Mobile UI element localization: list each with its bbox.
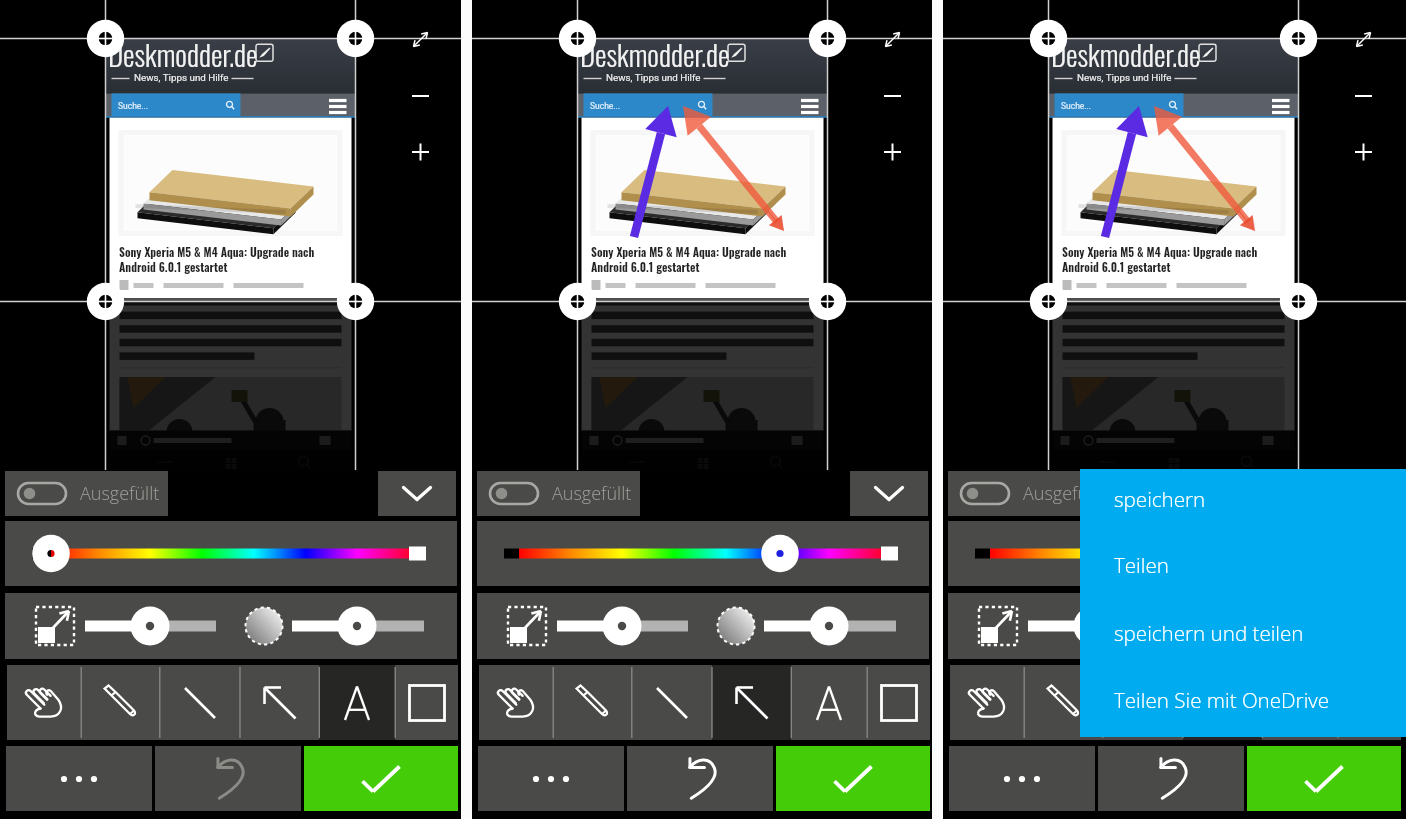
button[interactable]: Zuschneiden oben rechts bbox=[337, 20, 375, 58]
staticText: News, Tipps und Hilfe bbox=[1077, 72, 1172, 83]
button[interactable]: Rechteck bbox=[395, 665, 458, 740]
button[interactable]: Zuschneiden oben rechts bbox=[809, 20, 847, 58]
button[interactable]: Linie bbox=[632, 665, 712, 740]
button[interactable]: Pfeil bbox=[240, 665, 319, 740]
staticText: Ausgefüllt bbox=[552, 481, 632, 506]
staticText: News, Tipps und Hilfe bbox=[134, 72, 229, 83]
staticText: Ausgefüllt bbox=[1023, 481, 1103, 506]
button[interactable]: Vergrößern bbox=[875, 135, 910, 170]
button[interactable]: Farbe bbox=[5, 521, 457, 586]
staticText: News, Tipps und Hilfe bbox=[606, 72, 701, 83]
button[interactable]: Stift bbox=[1024, 665, 1103, 740]
button[interactable]: Linie bbox=[160, 665, 240, 740]
button[interactable]: Erweitern bbox=[850, 471, 928, 516]
button[interactable]: Größe und Deckkraft bbox=[477, 593, 929, 659]
button[interactable]: Zuschneiden oben links bbox=[559, 20, 597, 58]
button[interactable]: Rechteck bbox=[867, 665, 930, 740]
staticText: Teilen bbox=[1114, 551, 1169, 579]
staticText: Sony Xperia M5 & M4 Aqua: Upgrade nach A… bbox=[119, 243, 315, 275]
button[interactable]: Rückgängig bbox=[1098, 746, 1244, 811]
button[interactable]: speichern bbox=[1080, 477, 1406, 521]
button[interactable]: Ausgefüllt bbox=[948, 471, 1111, 516]
staticText: Sony Xperia M5 & M4 Aqua: Upgrade nach A… bbox=[591, 243, 787, 275]
button[interactable]: Größe anpassen bbox=[403, 22, 438, 57]
staticText: Sony Xperia M5 & M4 Aqua: Upgrade nach A… bbox=[1062, 243, 1258, 275]
button[interactable]: Zuschneiden unten rechts bbox=[337, 283, 375, 321]
button[interactable]: Zuschneiden unten links bbox=[559, 283, 597, 321]
button[interactable]: speichern und teilen bbox=[1080, 611, 1406, 655]
button[interactable]: Fertig bbox=[304, 746, 458, 811]
button[interactable]: Zuschneiden oben links bbox=[87, 20, 125, 58]
button[interactable]: Zuschneiden unten rechts bbox=[809, 283, 847, 321]
button[interactable]: Rückgängig bbox=[155, 746, 301, 811]
button[interactable]: Vergrößern bbox=[403, 135, 438, 170]
button[interactable]: Fertig bbox=[776, 746, 930, 811]
staticText: Suche... bbox=[1061, 101, 1092, 111]
button[interactable]: Fertig bbox=[1247, 746, 1401, 811]
button[interactable]: Verkleinern bbox=[1346, 79, 1381, 114]
button[interactable]: Text bbox=[791, 665, 867, 740]
button[interactable]: Zuschneiden unten rechts bbox=[1280, 283, 1318, 321]
button[interactable]: Pfeil bbox=[1183, 665, 1262, 740]
staticText: Suche... bbox=[118, 101, 149, 111]
button[interactable]: Stift bbox=[553, 665, 632, 740]
button[interactable]: Linie bbox=[1103, 665, 1183, 740]
button[interactable]: Text bbox=[1262, 665, 1338, 740]
button[interactable]: Verkleinern bbox=[875, 79, 910, 114]
button[interactable]: Ausgefüllt bbox=[477, 471, 640, 516]
button[interactable]: Ausgefüllt bbox=[5, 471, 168, 516]
button[interactable]: Farbe bbox=[948, 521, 1400, 586]
button[interactable]: Auswahl bbox=[7, 665, 82, 740]
button[interactable]: Zuschneiden oben rechts bbox=[1280, 20, 1318, 58]
staticText: speichern bbox=[1114, 485, 1206, 513]
button[interactable]: Teilen Sie mit OneDrive bbox=[1080, 678, 1406, 722]
button[interactable]: Größe und Deckkraft bbox=[948, 593, 1400, 659]
button[interactable]: Weitere Optionen bbox=[478, 746, 624, 811]
button[interactable]: Pfeil bbox=[712, 665, 791, 740]
button[interactable]: Vergrößern bbox=[1346, 135, 1381, 170]
button[interactable]: Zuschneiden oben links bbox=[1030, 20, 1068, 58]
button[interactable]: Text bbox=[319, 665, 395, 740]
staticText: Ausgefüllt bbox=[80, 481, 160, 506]
button[interactable]: Verkleinern bbox=[403, 79, 438, 114]
button[interactable]: Teilen bbox=[1080, 543, 1406, 587]
staticText: Teilen Sie mit OneDrive bbox=[1114, 686, 1330, 714]
button[interactable]: Größe anpassen bbox=[875, 22, 910, 57]
button[interactable]: Rückgängig bbox=[627, 746, 773, 811]
button[interactable]: Zuschneiden unten links bbox=[1030, 283, 1068, 321]
button[interactable]: Farbe bbox=[477, 521, 929, 586]
button[interactable]: Auswahl bbox=[479, 665, 554, 740]
button[interactable]: Stift bbox=[81, 665, 160, 740]
staticText: Deskmodder.de bbox=[580, 32, 730, 75]
staticText: speichern und teilen bbox=[1114, 619, 1304, 647]
staticText: Suche... bbox=[590, 101, 621, 111]
button[interactable]: Zuschneiden unten links bbox=[87, 283, 125, 321]
staticText: Deskmodder.de bbox=[1051, 32, 1201, 75]
button[interactable]: Größe und Deckkraft bbox=[5, 593, 457, 659]
button[interactable]: Weitere Optionen bbox=[949, 746, 1095, 811]
staticText: Deskmodder.de bbox=[108, 32, 258, 75]
button[interactable]: Erweitern bbox=[378, 471, 456, 516]
button[interactable]: Größe anpassen bbox=[1346, 22, 1381, 57]
button[interactable]: Auswahl bbox=[950, 665, 1025, 740]
button[interactable]: Weitere Optionen bbox=[6, 746, 152, 811]
button[interactable]: Rechteck bbox=[1338, 665, 1401, 740]
